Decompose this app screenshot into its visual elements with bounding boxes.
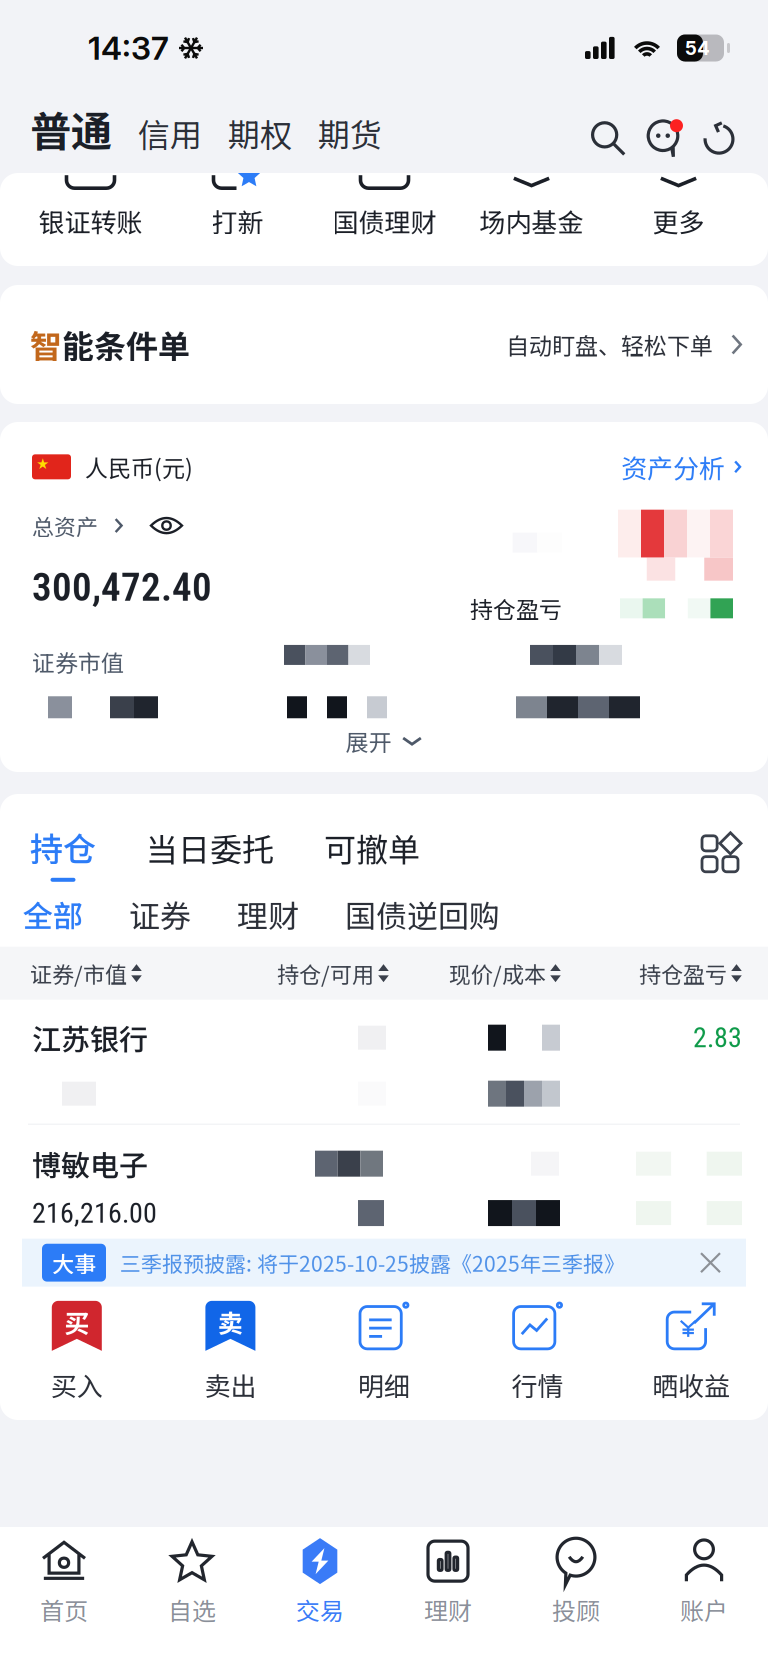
staticText: 自动盯盘、轻松下单 xyxy=(506,328,713,361)
staticText: 理财 xyxy=(424,1592,472,1627)
staticText: 自选 xyxy=(168,1592,216,1627)
button[interactable]: 智 xyxy=(0,285,768,404)
staticText: 打新 xyxy=(211,202,263,240)
button[interactable]: 国债理财 xyxy=(311,173,458,241)
staticText: 人民币(元) xyxy=(85,450,193,483)
staticText: 持仓 xyxy=(30,823,96,871)
staticText: 投顾 xyxy=(552,1592,600,1627)
staticText: 三季报预披露: 将于2025-10-25披露《2025年三季报》 xyxy=(120,1247,625,1278)
staticText: 资产分析 xyxy=(621,448,725,486)
staticText: ★ xyxy=(36,456,50,472)
button[interactable]: 博敏电子 xyxy=(0,1125,768,1239)
staticText: 买入 xyxy=(51,1366,103,1403)
staticText: 现价/成本 xyxy=(449,957,546,989)
button[interactable]: 行情 xyxy=(461,1282,614,1412)
button[interactable]: 银证转账 xyxy=(17,173,164,241)
staticText: 14:37 xyxy=(88,29,169,67)
button[interactable]: 当日委托 xyxy=(146,824,274,882)
staticText: 证券 xyxy=(129,892,191,937)
button[interactable]: 投顾 xyxy=(512,1527,640,1637)
staticText: 信用 xyxy=(138,110,202,156)
button[interactable]: 可撤单 xyxy=(324,824,420,882)
staticText: 交易 xyxy=(296,1592,344,1627)
staticText: 理财 xyxy=(237,892,299,937)
staticText: 证券市值 xyxy=(32,645,124,678)
button[interactable]: 搜索 xyxy=(591,121,626,158)
staticText: 能条件单 xyxy=(62,321,190,368)
button[interactable]: 普通 xyxy=(30,99,112,158)
staticText: 展开 xyxy=(345,724,391,758)
button[interactable]: 切换布局 xyxy=(702,836,738,882)
staticText: 全部 xyxy=(23,892,83,936)
button[interactable]: 场内基金 xyxy=(458,173,605,241)
button[interactable]: 首页 xyxy=(0,1527,128,1637)
button[interactable]: 展开 xyxy=(345,724,422,758)
button[interactable]: 全部 xyxy=(23,892,83,936)
button[interactable]: 理财 xyxy=(191,892,299,937)
staticText: 普通 xyxy=(30,99,112,158)
staticText: 明细 xyxy=(358,1366,410,1403)
staticText: 首页 xyxy=(40,1592,88,1627)
staticText: 银证转账 xyxy=(38,202,142,240)
button[interactable]: 消息 xyxy=(642,119,684,158)
button[interactable]: 晒收益 xyxy=(614,1282,768,1412)
staticText: 期货 xyxy=(318,110,382,156)
button[interactable]: 江苏银行 xyxy=(0,1000,768,1124)
button[interactable]: 关闭 xyxy=(701,1253,720,1272)
button[interactable]: 期权 xyxy=(202,110,292,158)
button[interactable]: 卖 xyxy=(154,1282,307,1412)
button[interactable]: 信用 xyxy=(112,110,202,158)
button[interactable]: 交易 xyxy=(256,1527,384,1637)
button[interactable]: 更多 xyxy=(605,173,752,241)
button[interactable]: 证券 xyxy=(83,892,191,937)
button[interactable]: 买 xyxy=(0,1282,154,1412)
button[interactable]: 理财 xyxy=(384,1527,512,1637)
button[interactable]: 隐藏金额 xyxy=(151,519,182,533)
button[interactable]: 期货 xyxy=(292,110,382,158)
staticText: 智 xyxy=(30,321,62,368)
staticText: 账户 xyxy=(680,1592,728,1627)
staticText: 持仓盈亏 xyxy=(639,957,727,989)
staticText: 行情 xyxy=(512,1366,564,1403)
button[interactable]: 明细 xyxy=(307,1282,461,1412)
staticText: 总资产 xyxy=(32,510,98,541)
button[interactable]: 资产分析 xyxy=(621,448,742,486)
staticText: 300,472.40 xyxy=(32,564,212,610)
staticText: 可撤单 xyxy=(324,824,420,871)
staticText: 持仓盈亏 xyxy=(470,592,562,625)
staticText: 持仓/可用 xyxy=(277,957,374,989)
staticText: 卖 xyxy=(218,1304,243,1340)
staticText: 江苏银行 xyxy=(32,1017,148,1059)
staticText: 当日委托 xyxy=(146,824,274,871)
staticText: 国债逆回购 xyxy=(345,892,500,937)
staticText: 晒收益 xyxy=(652,1366,730,1403)
staticText: 买 xyxy=(64,1304,89,1340)
staticText: 大事 xyxy=(52,1247,96,1279)
button[interactable]: 国债逆回购 xyxy=(299,892,500,937)
button[interactable]: 持仓 xyxy=(30,823,96,882)
button[interactable]: 打新 xyxy=(164,173,311,241)
button[interactable]: 刷新 xyxy=(702,122,736,158)
button[interactable]: 账户 xyxy=(640,1527,768,1637)
staticText: 卖出 xyxy=(204,1366,256,1403)
staticText: 期权 xyxy=(228,110,292,156)
staticText: 更多 xyxy=(652,202,704,240)
staticText: 216,216.00 xyxy=(32,1197,157,1229)
staticText: 国债理财 xyxy=(332,202,436,240)
staticText: 54 xyxy=(685,36,710,59)
staticText: 博敏电子 xyxy=(32,1143,148,1185)
button[interactable]: 自选 xyxy=(128,1527,256,1637)
staticText: 2.83 xyxy=(693,1021,742,1054)
staticText: 场内基金 xyxy=(479,202,583,240)
staticText: 证券/市值 xyxy=(30,957,127,989)
